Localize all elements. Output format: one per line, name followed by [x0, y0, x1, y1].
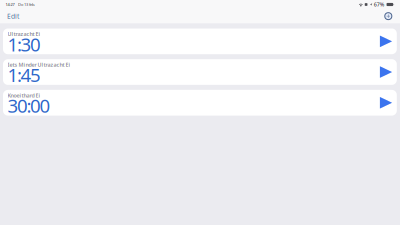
button[interactable]: Iets Minder Ultrazacht Ei: [3, 59, 397, 85]
button[interactable]: Knoeithard Ei: [3, 90, 397, 116]
staticText: Do 13 feb.: [18, 2, 35, 7]
staticText: Edit: [7, 12, 19, 21]
button[interactable]: Ultrazacht Ei: [3, 28, 397, 54]
staticText: 1:45: [8, 62, 41, 87]
staticText: Iets Minder Ultrazacht Ei: [8, 61, 71, 68]
staticText: 30:00: [8, 93, 51, 118]
button[interactable]: Add timer: [382, 10, 395, 23]
staticText: 67%: [374, 1, 385, 8]
staticText: Ultrazacht Ei: [8, 30, 41, 38]
staticText: 14:27: [6, 2, 15, 7]
staticText: 1:30: [8, 32, 41, 57]
staticText: Knoeithard Ei: [8, 92, 41, 99]
button[interactable]: Edit: [4, 9, 22, 23]
